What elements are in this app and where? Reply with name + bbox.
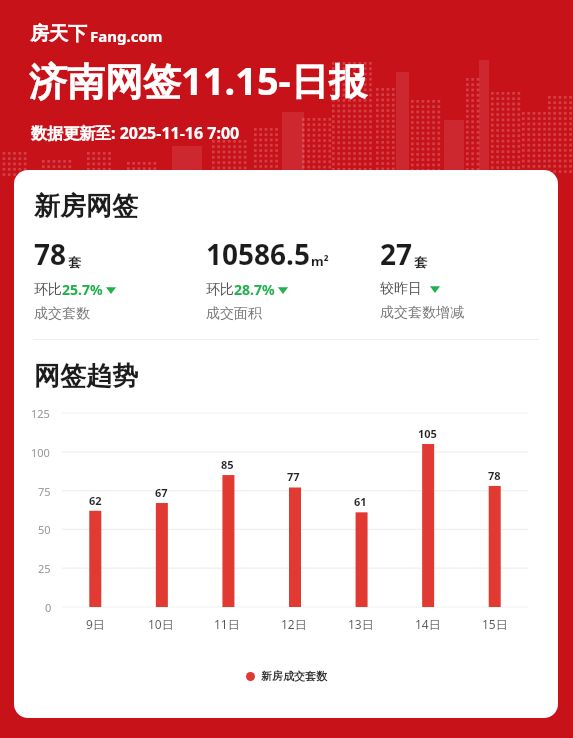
staticText: 12日	[281, 616, 307, 632]
staticText: Fang.com	[90, 26, 163, 46]
staticText: 0	[45, 600, 52, 615]
staticText: 较昨日	[380, 280, 422, 298]
staticText: 14日	[415, 616, 441, 632]
staticText: 77	[287, 469, 300, 484]
staticText: 125	[31, 406, 50, 421]
staticText: 环比	[206, 281, 234, 299]
staticText: 套	[68, 254, 81, 270]
staticText: 13日	[348, 616, 374, 632]
staticText: 61	[354, 494, 367, 509]
staticText: 100	[31, 445, 50, 460]
staticText: 75	[38, 484, 51, 499]
staticText: 9日	[86, 616, 105, 632]
staticText: 67	[155, 485, 168, 500]
staticText: 28.7%	[234, 280, 275, 299]
staticText: 78	[34, 235, 67, 273]
button[interactable]: Fang.com home	[30, 22, 163, 46]
staticText: 新房成交套数	[261, 669, 327, 683]
button[interactable]: 10586.5	[206, 235, 380, 323]
staticText: 套	[414, 254, 427, 270]
staticText: 15日	[482, 616, 508, 632]
staticText: 85	[221, 457, 234, 472]
button[interactable]: 新房成交套数	[14, 669, 558, 683]
button[interactable]: 78	[34, 235, 206, 323]
button[interactable]: 27	[380, 235, 558, 322]
staticText: 新房网签	[34, 190, 138, 223]
staticText: 10586.5	[206, 235, 310, 273]
staticText: 27	[380, 235, 413, 273]
staticText: 50	[38, 522, 51, 537]
staticText: 网签趋势	[34, 360, 138, 393]
staticText: 环比	[34, 281, 62, 299]
staticText: 78	[488, 468, 501, 483]
staticText: 105	[418, 426, 437, 441]
staticText: 济南网签11.15-日报	[29, 54, 367, 106]
staticText: 62	[89, 493, 102, 508]
staticText: 成交套数	[34, 305, 90, 323]
staticText: m²	[311, 252, 329, 270]
staticText: 成交面积	[206, 305, 262, 323]
staticText: 25	[38, 561, 51, 576]
staticText: 25.7%	[62, 280, 103, 299]
staticText: 10日	[148, 616, 174, 632]
staticText: 11日	[214, 616, 240, 632]
staticText: 成交套数增减	[380, 304, 464, 322]
staticText: 房天下	[30, 22, 87, 46]
staticText: 数据更新至: 2025-11-16 7:00	[31, 122, 240, 144]
